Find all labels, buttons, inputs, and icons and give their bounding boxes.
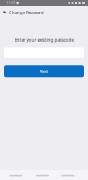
button[interactable]: Back bbox=[3, 6, 9, 20]
button[interactable]: Next bbox=[4, 65, 84, 77]
staticText: 11:01 bbox=[7, 1, 16, 5]
staticText: Next bbox=[39, 69, 48, 74]
staticText: Enter your existing passcode bbox=[14, 37, 73, 43]
staticText: Change Password bbox=[9, 10, 44, 15]
